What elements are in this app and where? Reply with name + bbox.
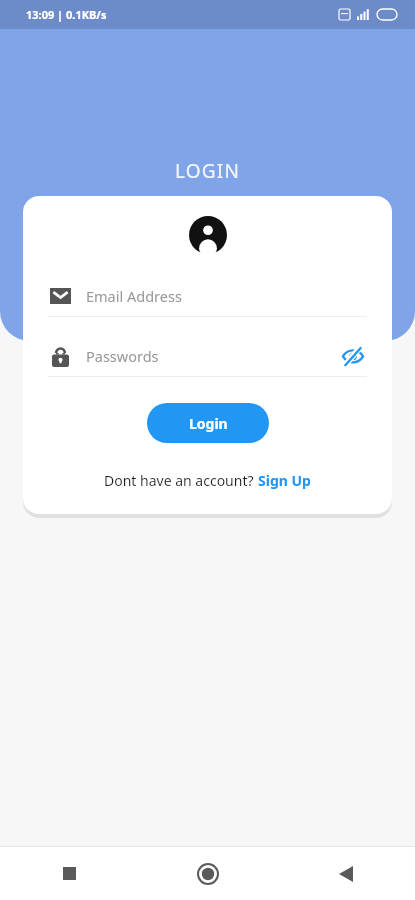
other: Account (189, 216, 227, 254)
button[interactable]: Toggle password visibility (339, 342, 367, 370)
button[interactable]: Recents (0, 847, 139, 900)
button[interactable]: Back (277, 847, 415, 900)
staticText: 13:09 | 0.1KB/s (26, 7, 107, 22)
button[interactable]: Home (139, 847, 277, 900)
staticText: Sign Up (258, 471, 311, 490)
staticText: LOGIN (175, 158, 241, 184)
staticText: Login (189, 414, 228, 433)
staticText: Email Address (86, 286, 367, 306)
staticText: Dont have an account? (104, 471, 258, 490)
staticText: Passwords (86, 346, 339, 366)
button[interactable]: Passwords (48, 336, 367, 377)
button[interactable]: Login (147, 403, 269, 443)
button[interactable]: Dont have an account? (104, 471, 311, 490)
button[interactable]: Email Address (48, 276, 367, 317)
